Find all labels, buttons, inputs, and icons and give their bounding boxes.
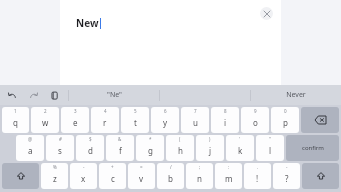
button[interactable]: ; bbox=[186, 163, 213, 189]
button[interactable]: 8 bbox=[211, 107, 239, 133]
button[interactable]: 0 bbox=[271, 107, 299, 133]
staticText: y bbox=[163, 117, 168, 128]
button[interactable]: Shift right bbox=[302, 163, 339, 189]
staticText: 4 bbox=[104, 108, 107, 114]
button[interactable]: 4 bbox=[91, 107, 119, 133]
button[interactable]: "Ne" bbox=[69, 85, 159, 105]
staticText: ! bbox=[256, 173, 259, 184]
staticText: s bbox=[58, 145, 62, 156]
staticText: & bbox=[118, 136, 122, 142]
button[interactable]: 7 bbox=[181, 107, 209, 133]
button[interactable]: 5 bbox=[121, 107, 149, 133]
button[interactable]: = bbox=[128, 163, 155, 189]
staticText: / bbox=[170, 164, 172, 170]
staticText: 9 bbox=[254, 108, 257, 114]
staticText: : bbox=[228, 164, 230, 170]
staticText: z bbox=[53, 173, 57, 184]
staticText: u bbox=[193, 117, 198, 128]
button[interactable]: confirm bbox=[286, 135, 339, 161]
button[interactable]: Undo bbox=[6, 89, 19, 102]
staticText: j bbox=[209, 145, 212, 156]
staticText: v bbox=[139, 173, 144, 184]
button[interactable]: @ bbox=[16, 135, 44, 161]
button[interactable]: - bbox=[70, 163, 97, 189]
staticText: Never bbox=[286, 90, 306, 100]
staticText: 5 bbox=[134, 108, 137, 114]
staticText: w bbox=[42, 117, 49, 128]
staticText: confirm bbox=[302, 144, 324, 152]
staticText: x bbox=[81, 173, 86, 184]
staticText: e bbox=[73, 117, 78, 128]
staticText: 2 bbox=[44, 108, 47, 114]
staticText: ' bbox=[239, 136, 241, 142]
staticText: f bbox=[119, 145, 122, 156]
staticText: 1 bbox=[14, 108, 17, 114]
button[interactable]: + bbox=[99, 163, 126, 189]
staticText: a bbox=[28, 145, 33, 156]
staticText: - bbox=[83, 164, 85, 170]
staticText: o bbox=[253, 117, 258, 128]
staticText: n bbox=[197, 173, 202, 184]
staticText: % bbox=[53, 164, 57, 170]
button[interactable]: Never bbox=[251, 85, 341, 105]
button[interactable]: ) bbox=[196, 135, 224, 161]
staticText: "Ne" bbox=[107, 90, 122, 100]
staticText: l bbox=[269, 145, 272, 156]
button[interactable]: 9 bbox=[241, 107, 269, 133]
button[interactable]: : bbox=[215, 163, 242, 189]
button[interactable]: 2 bbox=[31, 107, 59, 133]
staticText: + bbox=[111, 164, 114, 170]
staticText: * bbox=[149, 136, 152, 142]
button[interactable]: Shift bbox=[2, 163, 39, 189]
button[interactable]: 3 bbox=[61, 107, 89, 133]
staticText: 8 bbox=[224, 108, 227, 114]
staticText: h bbox=[178, 145, 183, 156]
staticText: c bbox=[111, 173, 115, 184]
staticText: ; bbox=[199, 164, 201, 170]
button[interactable]: . bbox=[244, 163, 271, 189]
button[interactable]: 6 bbox=[151, 107, 179, 133]
staticText: d bbox=[88, 145, 93, 156]
staticText: m bbox=[225, 173, 233, 184]
button[interactable]: ( bbox=[166, 135, 194, 161]
staticText: 6 bbox=[164, 108, 167, 114]
staticText: @ bbox=[28, 136, 33, 142]
staticText: ) bbox=[209, 136, 211, 142]
staticText: r bbox=[103, 117, 107, 128]
staticText: " bbox=[269, 136, 271, 142]
button[interactable]: " bbox=[256, 135, 284, 161]
button[interactable]: % bbox=[41, 163, 68, 189]
staticText: p bbox=[283, 117, 288, 128]
staticText: = bbox=[140, 164, 143, 170]
staticText: ? bbox=[285, 173, 289, 184]
staticText: k bbox=[238, 145, 243, 156]
button[interactable]: / bbox=[157, 163, 184, 189]
staticText: 0 bbox=[284, 108, 287, 114]
staticText: ( bbox=[179, 136, 181, 142]
staticText: . bbox=[257, 164, 259, 170]
staticText: - bbox=[286, 164, 288, 170]
staticText: q bbox=[13, 117, 18, 128]
button[interactable]: * bbox=[136, 135, 164, 161]
staticText: g bbox=[148, 145, 153, 156]
staticText: 3 bbox=[74, 108, 77, 114]
button[interactable]: Redo bbox=[27, 89, 40, 102]
staticText: 7 bbox=[194, 108, 197, 114]
button[interactable]: Clipboard bbox=[48, 89, 61, 102]
button[interactable]: 1 bbox=[2, 107, 29, 133]
staticText: t bbox=[134, 117, 137, 128]
button[interactable]: & bbox=[106, 135, 134, 161]
button[interactable]: ' bbox=[226, 135, 254, 161]
staticText: New bbox=[76, 16, 99, 30]
button[interactable]: - bbox=[273, 163, 300, 189]
staticText: b bbox=[168, 173, 173, 184]
button[interactable]: Backspace bbox=[301, 107, 339, 133]
button[interactable]: # bbox=[46, 135, 74, 161]
staticText: i bbox=[224, 117, 227, 128]
button[interactable]: Close bbox=[260, 7, 273, 20]
button[interactable]: $ bbox=[76, 135, 104, 161]
staticText: # bbox=[59, 136, 62, 142]
staticText: $ bbox=[89, 136, 92, 142]
